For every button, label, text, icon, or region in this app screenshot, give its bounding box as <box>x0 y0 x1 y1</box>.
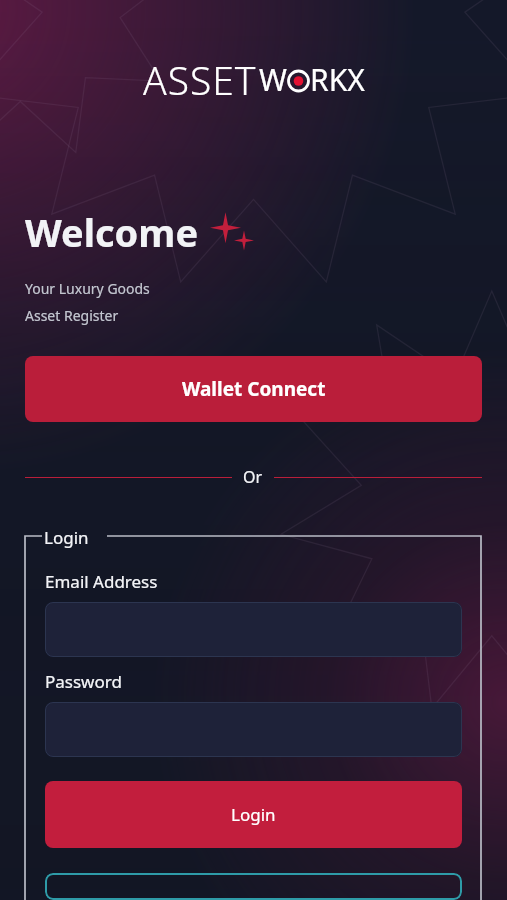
staticText: W <box>259 59 287 100</box>
button[interactable]: Login <box>45 781 462 848</box>
staticText: RKX <box>310 59 365 100</box>
staticText: ASSET <box>143 53 257 106</box>
button[interactable]: Sign up <box>45 873 462 900</box>
staticText: Your Luxury Goods <box>25 279 150 298</box>
button[interactable]: Wallet Connect <box>25 356 482 422</box>
staticText: Or <box>243 466 263 488</box>
staticText: Asset Register <box>25 306 119 325</box>
button[interactable]: Email Address field <box>45 602 462 657</box>
staticText: Password <box>45 670 122 693</box>
staticText: Wallet Connect <box>182 376 326 402</box>
staticText: Login <box>44 526 89 549</box>
staticText: Email Address <box>45 570 158 593</box>
staticText: Welcome <box>25 206 199 258</box>
staticText: Login <box>231 803 276 826</box>
button[interactable]: Password field <box>45 702 462 757</box>
